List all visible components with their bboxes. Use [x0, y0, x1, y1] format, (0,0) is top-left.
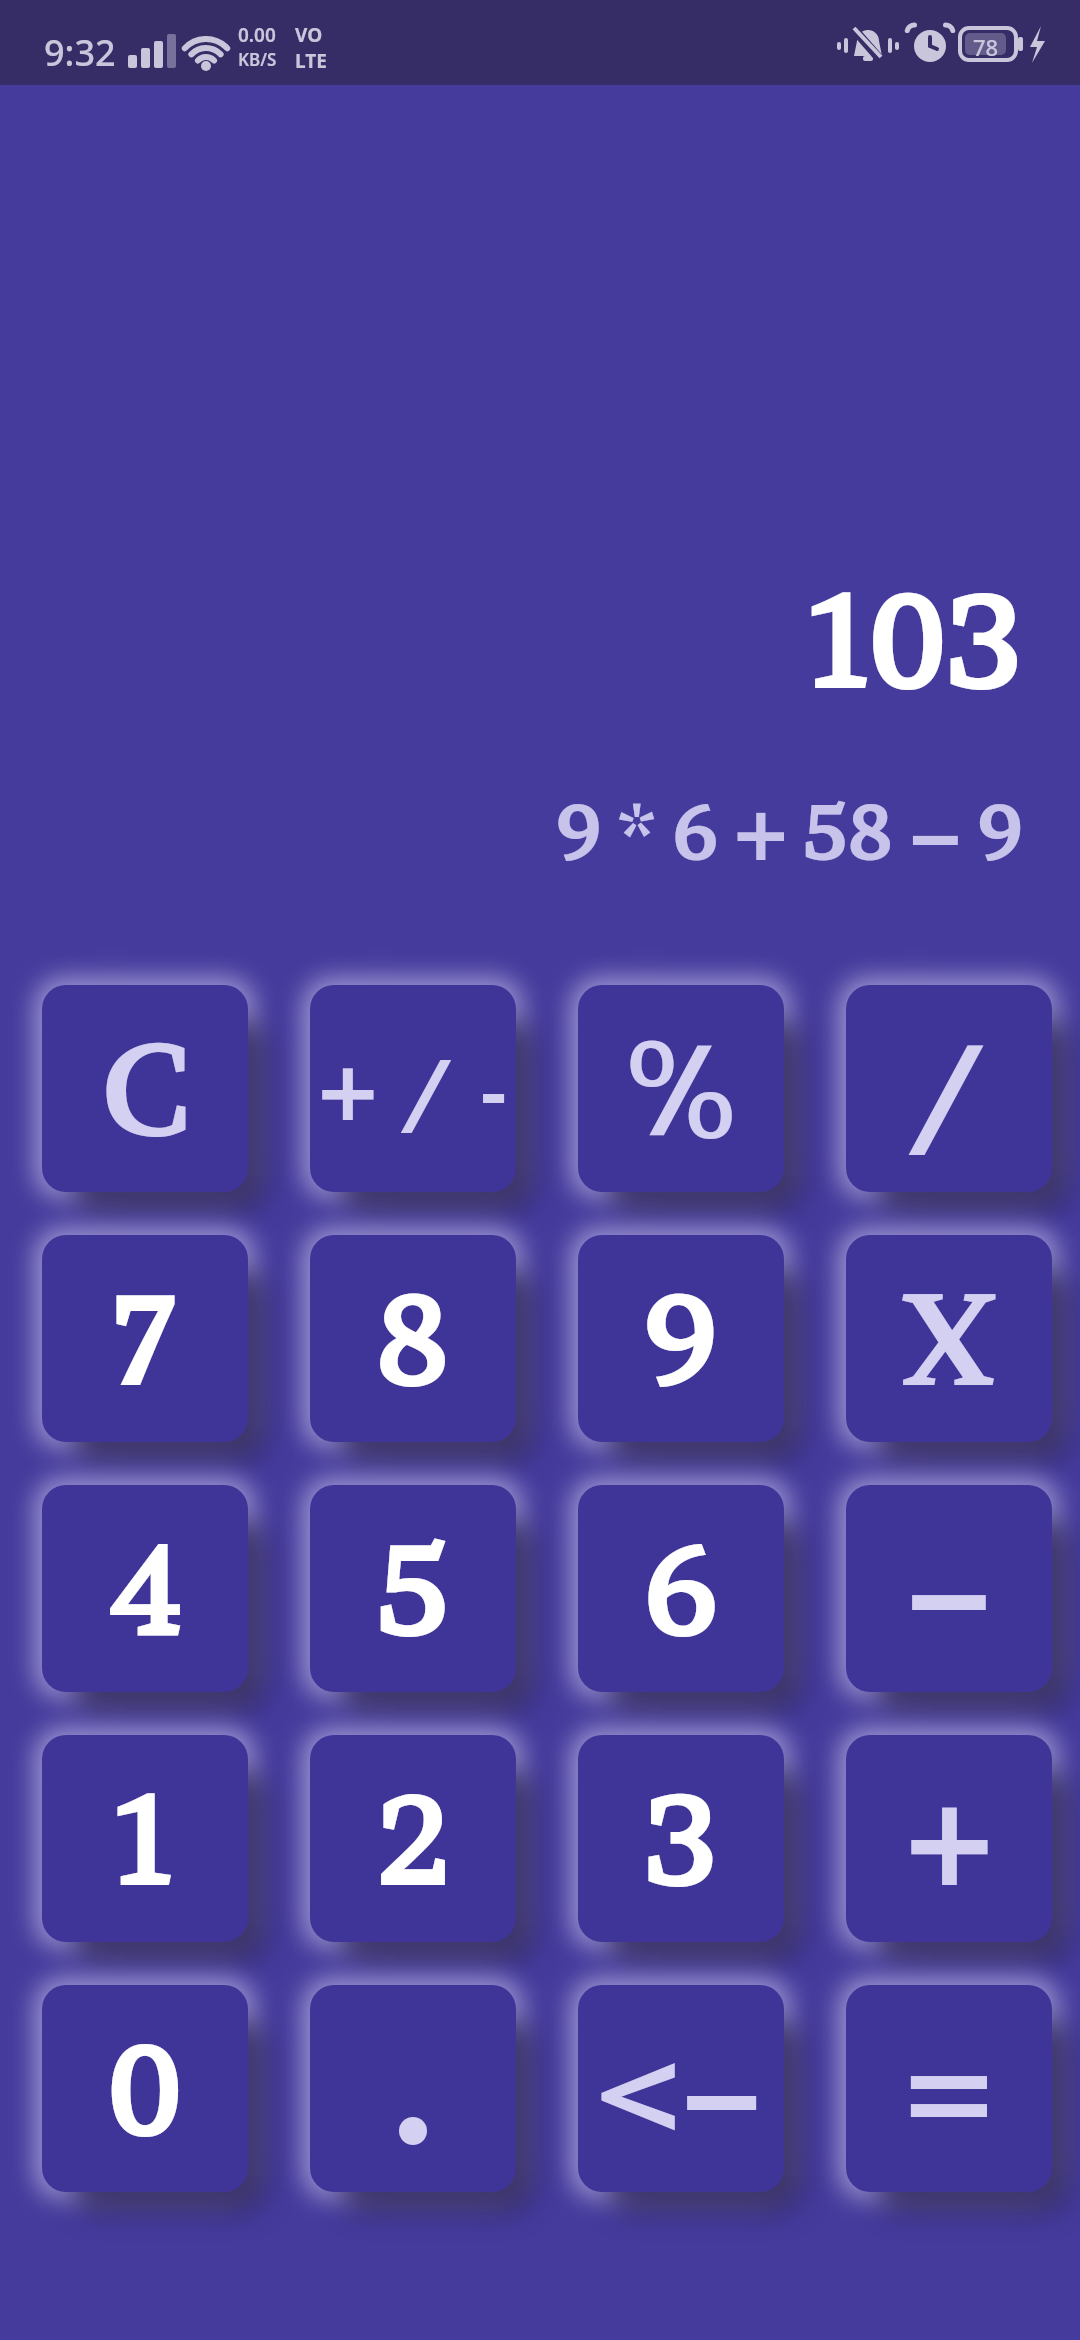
button[interactable]: 7	[42, 1235, 248, 1442]
staticText: 78	[973, 32, 999, 62]
staticText: 0	[107, 2011, 183, 2167]
button[interactable]: 0	[42, 1985, 248, 2192]
staticText: 3	[645, 1761, 718, 1917]
staticText: VO	[295, 22, 323, 48]
button[interactable]: 9	[578, 1235, 784, 1442]
staticText: 0.00	[238, 22, 276, 48]
staticText: 9 * 6 + 58 – 9	[0, 784, 1022, 879]
button[interactable]: 3	[578, 1735, 784, 1942]
button[interactable]	[310, 1985, 516, 2192]
staticText: 2	[376, 1761, 450, 1917]
staticText: + / -	[318, 1036, 509, 1141]
staticText: –	[904, 1511, 994, 1667]
button[interactable]: 6	[578, 1485, 784, 1692]
staticText: 4	[105, 1511, 185, 1667]
button[interactable]: =	[846, 1985, 1052, 2192]
staticText: 9	[645, 1261, 717, 1417]
staticText: 1	[113, 1761, 177, 1917]
button[interactable]: C	[42, 985, 248, 1192]
button[interactable]: 1	[42, 1735, 248, 1942]
button[interactable]: 5	[310, 1485, 516, 1692]
staticText: 8	[376, 1261, 450, 1417]
button[interactable]: + / -	[310, 985, 516, 1192]
staticText: +	[905, 1761, 994, 1917]
button[interactable]: X	[846, 1235, 1052, 1442]
button[interactable]: /	[846, 985, 1052, 1192]
staticText: C	[100, 1011, 190, 1167]
button[interactable]: <–	[578, 1985, 784, 2192]
button[interactable]: 8	[310, 1235, 516, 1442]
staticText: 6	[644, 1511, 719, 1667]
staticText: KB/S	[238, 48, 277, 71]
button[interactable]: 2	[310, 1735, 516, 1942]
staticText: 7	[112, 1261, 178, 1417]
button[interactable]: –	[846, 1485, 1052, 1692]
staticText: 9:32	[44, 28, 116, 77]
button[interactable]: +	[846, 1735, 1052, 1942]
staticText: 5	[377, 1511, 450, 1667]
staticText: 103	[0, 559, 1022, 721]
staticText: LTE	[295, 48, 327, 74]
button[interactable]: %	[578, 985, 784, 1192]
staticText: X	[899, 1261, 1000, 1417]
staticText: =	[902, 2011, 996, 2167]
staticText: /	[911, 1011, 988, 1167]
staticText: <–	[598, 2016, 764, 2162]
staticText: %	[626, 1011, 737, 1167]
button[interactable]: 4	[42, 1485, 248, 1692]
